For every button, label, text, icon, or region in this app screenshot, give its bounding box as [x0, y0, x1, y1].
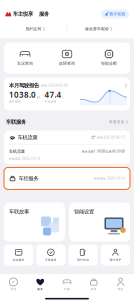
staticText: 车机流量 [9, 149, 25, 154]
staticText: 加油服务 [13, 258, 25, 262]
button[interactable]: 车机流量 [0, 130, 134, 164]
button[interactable]: 服务 [39, 11, 49, 17]
button[interactable]: 故障查询 [46, 50, 88, 66]
button[interactable]: 智能诊断 [88, 50, 130, 66]
staticText: 车险服务 [45, 258, 57, 262]
staticText: 修改爱车昵称 [85, 26, 109, 31]
staticText: 预约加油 [77, 258, 89, 262]
staticText: 智能诊断 [101, 61, 117, 66]
button[interactable]: 服务 [27, 278, 54, 291]
staticText: 剩余流量1.08GB/总量48.00GB [82, 150, 125, 153]
staticText: 更新于2024-02-09 [41, 84, 68, 87]
staticText: 车辆 [64, 287, 70, 291]
staticText: 车联服务 [6, 119, 26, 125]
staticText: 车况查询 [17, 61, 33, 66]
button[interactable]: 预约定时 [4, 24, 67, 33]
staticText: 预约定时 [26, 26, 42, 31]
button[interactable]: 车险服务 [36, 244, 65, 265]
staticText: 本月驾驶报告 [9, 82, 39, 89]
staticText: 智能设置 [74, 208, 94, 215]
staticText: 车联故事 [9, 208, 29, 215]
button[interactable]: 车辆 [54, 278, 80, 291]
button[interactable]: 预约养护 [101, 244, 130, 265]
button[interactable]: 车控服务 [0, 167, 134, 189]
button[interactable]: 修改爱车昵称 [67, 24, 130, 33]
staticText: L [62, 96, 63, 99]
staticText: 47.4 [44, 89, 61, 100]
button[interactable]: 商城 [80, 278, 107, 291]
staticText: 有效期至 2026-10-14 [9, 157, 40, 160]
staticText: 平均油耗 [44, 100, 56, 103]
button[interactable]: 加油服务 [4, 244, 33, 265]
staticText: 查看更多 [109, 119, 125, 124]
button[interactable]: 查看更多 [109, 119, 128, 124]
staticText: 车控服务 [18, 175, 38, 182]
staticText: 累计里程 [9, 100, 21, 103]
staticText: 预约养护 [109, 258, 121, 262]
button[interactable]: 车主悦享 [5, 11, 33, 17]
staticText: 更新于02-09 06:12 [97, 136, 125, 139]
staticText: 故障查询 [59, 61, 75, 66]
button[interactable]: 我的 [107, 278, 134, 291]
staticText: 数字钥匙 [109, 11, 125, 16]
staticText: 我的 [118, 287, 124, 291]
button[interactable]: 智能设置 [69, 202, 130, 241]
staticText: 服务 [39, 11, 49, 17]
staticText: 发现 [10, 287, 16, 291]
button[interactable]: 预约加油 [68, 244, 98, 265]
button[interactable]: 车况查询 [4, 50, 46, 66]
staticText: 服务 [37, 287, 43, 291]
staticText: 商城 [91, 287, 97, 291]
staticText: 车主悦享 [13, 11, 33, 17]
staticText: 有效期至 2026-10-14 [94, 177, 125, 180]
button[interactable]: 数字钥匙 [101, 9, 129, 18]
button[interactable]: 发现 [0, 278, 27, 291]
staticText: km [36, 96, 39, 99]
button[interactable]: 本月驾驶报告 [0, 77, 134, 110]
button[interactable]: 车联故事 [4, 202, 65, 241]
staticText: 1038.0 [9, 89, 36, 100]
staticText: 车机流量 [17, 134, 37, 141]
